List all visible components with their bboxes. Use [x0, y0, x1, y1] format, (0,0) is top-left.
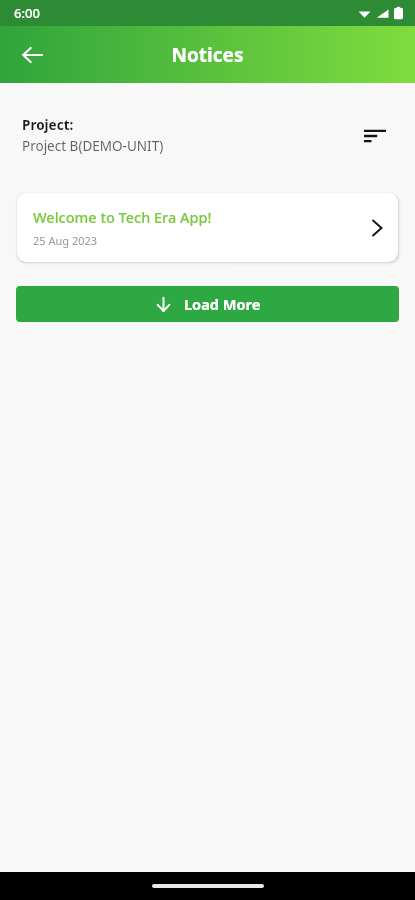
- staticText: 25 Aug 2023: [33, 233, 98, 248]
- staticText: Notices: [0, 42, 415, 68]
- staticText: Load More: [184, 294, 261, 314]
- staticText: 6:00: [14, 4, 40, 22]
- staticText: Project:: [22, 116, 74, 134]
- button[interactable]: Back: [12, 35, 52, 75]
- button[interactable]: Welcome to Tech Era App!: [17, 193, 398, 262]
- button[interactable]: Load More: [16, 286, 399, 322]
- button[interactable]: Filter: [355, 116, 395, 156]
- staticText: Project B(DEMO-UNIT): [22, 137, 164, 155]
- staticText: Welcome to Tech Era App!: [33, 207, 212, 227]
